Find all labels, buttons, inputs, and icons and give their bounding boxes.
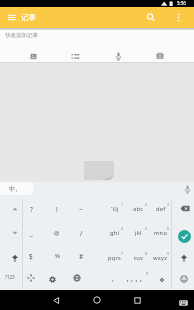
button[interactable] bbox=[25, 48, 41, 64]
button[interactable] bbox=[21, 269, 41, 287]
staticText: 2 bbox=[145, 202, 148, 207]
button[interactable] bbox=[153, 271, 171, 289]
button[interactable]: ? bbox=[20, 199, 42, 219]
staticText: tuv bbox=[134, 254, 144, 262]
button[interactable]: tuv bbox=[126, 248, 151, 268]
staticText: ~ bbox=[79, 205, 83, 214]
staticText: _ bbox=[30, 229, 33, 238]
staticText: 8 bbox=[145, 251, 148, 256]
button[interactable] bbox=[174, 248, 194, 268]
staticText: abc bbox=[133, 205, 144, 213]
staticText: ! bbox=[56, 205, 58, 214]
button[interactable] bbox=[174, 226, 194, 246]
staticText: 0 bbox=[146, 271, 149, 276]
button[interactable] bbox=[6, 199, 24, 219]
button[interactable]: wxyz bbox=[148, 248, 173, 268]
button[interactable]: jkl bbox=[126, 223, 151, 243]
staticText: 'Uj bbox=[111, 205, 119, 213]
button[interactable] bbox=[129, 292, 145, 308]
button[interactable]: pqrs bbox=[102, 248, 127, 268]
staticText: @ bbox=[54, 229, 60, 237]
staticText: ?123 bbox=[5, 274, 15, 280]
staticText: 快速添加记事 bbox=[5, 32, 38, 39]
button[interactable] bbox=[181, 184, 194, 195]
button[interactable]: mno bbox=[148, 223, 173, 243]
button[interactable]: , bbox=[104, 270, 122, 288]
staticText: mno bbox=[154, 229, 168, 237]
button[interactable]: ~ bbox=[70, 199, 92, 219]
staticText: jkl bbox=[135, 229, 142, 237]
button[interactable]: ! bbox=[46, 199, 68, 219]
staticText: % bbox=[55, 252, 60, 260]
button[interactable] bbox=[6, 248, 24, 268]
button[interactable] bbox=[117, 274, 151, 288]
staticText: pqrs bbox=[108, 254, 122, 262]
button[interactable] bbox=[89, 292, 105, 308]
staticText: def bbox=[156, 205, 166, 213]
staticText: 7 bbox=[121, 251, 124, 256]
staticText: 6 bbox=[167, 226, 170, 231]
staticText: wxyz bbox=[153, 254, 168, 262]
staticText: 4 bbox=[121, 226, 124, 231]
staticText: 9 bbox=[167, 251, 170, 256]
button[interactable] bbox=[152, 48, 168, 64]
button[interactable]: ghi bbox=[102, 223, 127, 243]
button[interactable] bbox=[4, 10, 19, 25]
staticText: $ bbox=[29, 252, 33, 261]
button[interactable]: # bbox=[70, 246, 92, 266]
button[interactable] bbox=[110, 48, 126, 64]
staticText: 5 bbox=[145, 226, 148, 231]
button[interactable] bbox=[176, 297, 191, 309]
button[interactable] bbox=[67, 48, 83, 64]
button[interactable]: _ bbox=[20, 223, 42, 243]
button[interactable] bbox=[48, 292, 64, 308]
button[interactable]: $ bbox=[20, 246, 42, 266]
button[interactable]: / bbox=[70, 223, 92, 243]
button[interactable]: 'Uj bbox=[102, 199, 127, 219]
staticText: ghi bbox=[110, 229, 120, 237]
button[interactable] bbox=[174, 270, 194, 288]
staticText: 中, bbox=[9, 184, 18, 193]
button[interactable] bbox=[143, 10, 158, 25]
button[interactable]: 快速添加记事 bbox=[0, 30, 194, 44]
button[interactable] bbox=[42, 270, 62, 288]
button[interactable] bbox=[67, 269, 87, 287]
button[interactable]: def bbox=[148, 199, 173, 219]
staticText: # bbox=[79, 252, 84, 261]
staticText: , bbox=[112, 274, 114, 284]
button[interactable] bbox=[6, 223, 24, 243]
button[interactable]: % bbox=[46, 246, 68, 266]
button[interactable]: ?123 bbox=[1, 268, 19, 286]
staticText: 3 bbox=[167, 202, 170, 207]
staticText: 1 bbox=[121, 202, 124, 207]
button[interactable] bbox=[171, 10, 186, 25]
staticText: / bbox=[80, 229, 83, 238]
button[interactable] bbox=[175, 199, 194, 219]
staticText: ? bbox=[30, 205, 33, 214]
staticText: 记事 bbox=[21, 13, 36, 22]
button[interactable]: @ bbox=[46, 223, 68, 243]
button[interactable]: abc bbox=[126, 199, 151, 219]
staticText: 5:56 bbox=[177, 0, 186, 6]
